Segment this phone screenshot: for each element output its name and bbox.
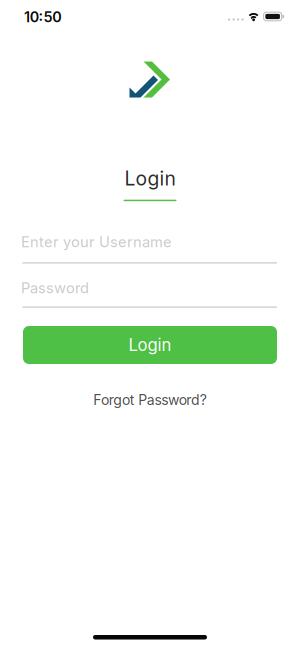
staticText: Forgot Password? <box>93 391 207 408</box>
staticText: Login <box>124 167 175 190</box>
button[interactable]: Login <box>23 326 277 364</box>
button[interactable]: Forgot Password? <box>50 390 250 410</box>
staticText: 10:50 <box>24 8 61 26</box>
staticText: Login <box>128 335 171 355</box>
staticText: Password <box>21 279 89 297</box>
staticText: Enter your Username <box>21 233 172 251</box>
